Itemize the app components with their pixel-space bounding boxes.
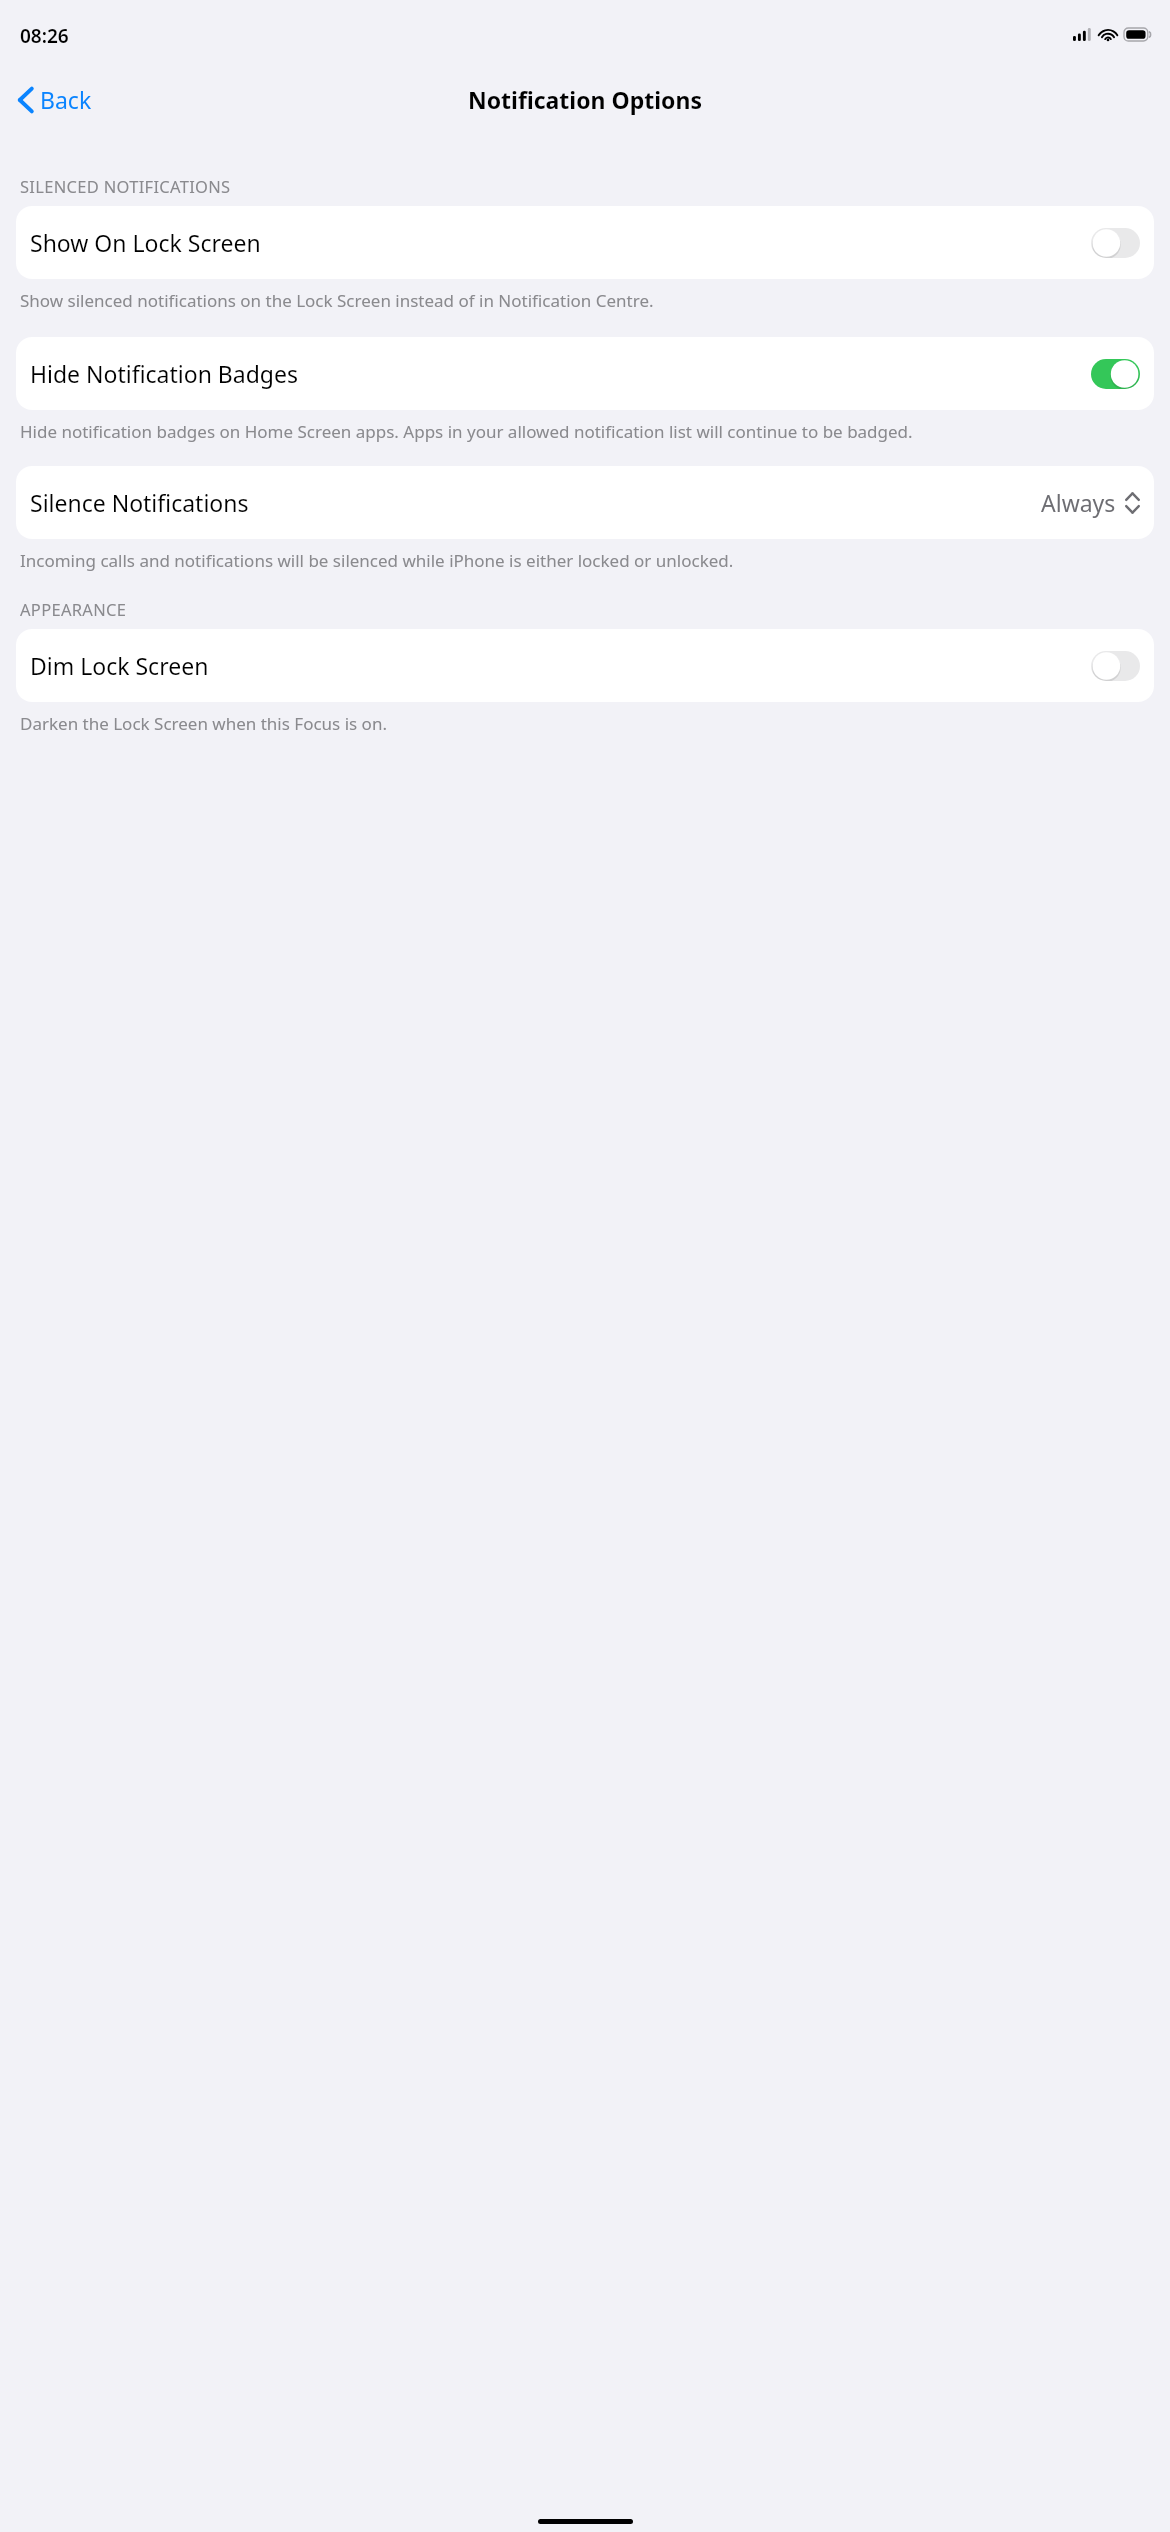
button[interactable]: Toggle on — [1091, 359, 1140, 389]
staticText: Always — [1041, 487, 1116, 518]
staticText: Show silenced notifications on the Lock … — [20, 289, 654, 312]
button[interactable]: Toggle off — [1091, 228, 1140, 258]
staticText: Dim Lock Screen — [30, 650, 209, 681]
button[interactable]: Dim Lock Screen — [16, 629, 1154, 702]
staticText: Darken the Lock Screen when this Focus i… — [20, 712, 387, 735]
button[interactable]: Hide Notification Badges — [16, 337, 1154, 410]
button[interactable]: Show On Lock Screen — [16, 206, 1154, 279]
staticText: Notification Options — [468, 84, 702, 115]
staticText: Hide notification badges on Home Screen … — [20, 420, 913, 443]
button[interactable]: Back — [0, 78, 104, 121]
staticText: Show On Lock Screen — [30, 227, 261, 258]
staticText: Incoming calls and notifications will be… — [20, 549, 734, 572]
staticText: SILENCED NOTIFICATIONS — [20, 175, 231, 197]
button[interactable]: Silence Notifications — [16, 466, 1154, 539]
staticText: 08:26 — [20, 23, 69, 49]
button[interactable]: Toggle off — [1091, 651, 1140, 681]
staticText: Silence Notifications — [30, 487, 249, 518]
staticText: Hide Notification Badges — [30, 358, 298, 389]
other: Change option — [1125, 491, 1140, 515]
staticText: APPEARANCE — [20, 598, 127, 620]
staticText: Back — [40, 84, 92, 115]
